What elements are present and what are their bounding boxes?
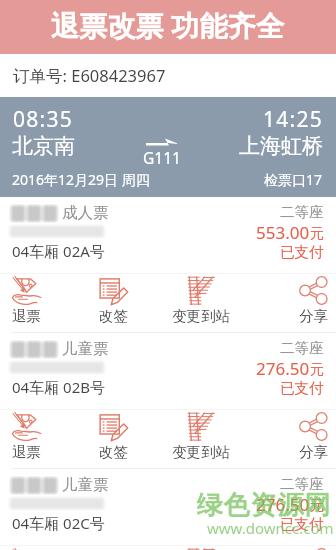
staticText: 276.50 xyxy=(256,493,310,516)
staticText: 已支付 xyxy=(280,379,324,397)
staticText: 04车厢 02C号 xyxy=(12,513,105,533)
staticText: 二等座 xyxy=(280,339,324,357)
staticText: 276.50 xyxy=(256,357,310,380)
staticText: 订单号: E608423967 xyxy=(13,64,166,87)
staticText: 儿童票 xyxy=(62,339,109,359)
staticText: 元 xyxy=(310,497,324,515)
staticText: 北京南 xyxy=(12,133,75,159)
button[interactable]: Change destination xyxy=(164,276,238,328)
button[interactable]: Change ticket xyxy=(76,412,150,464)
staticText: 退票 xyxy=(12,307,41,325)
staticText: 变更到站 xyxy=(172,307,230,325)
button[interactable]: Change destination xyxy=(164,412,238,464)
button[interactable]: Change destination xyxy=(164,548,238,550)
button[interactable]: Change ticket xyxy=(76,276,150,328)
staticText: www.downcc.com xyxy=(207,518,334,538)
staticText: 08:35 xyxy=(13,105,74,134)
staticText: 04车厢 02B号 xyxy=(12,377,105,397)
staticText: 退票 xyxy=(12,443,41,461)
staticText: 改签 xyxy=(99,443,128,461)
staticText: 改签 xyxy=(99,307,128,325)
staticText: 儿童票 xyxy=(62,475,109,495)
staticText: 553.00 xyxy=(256,221,310,244)
staticText: 元 xyxy=(310,225,324,243)
button[interactable]: Refund ticket xyxy=(0,412,63,464)
staticText: 二等座 xyxy=(280,475,324,493)
staticText: 变更到站 xyxy=(172,443,230,461)
staticText: 2016年12月29日 周四 xyxy=(12,170,150,189)
staticText: 元 xyxy=(310,361,324,379)
staticText: 二等座 xyxy=(280,203,324,221)
staticText: 绿色资源网 xyxy=(196,489,331,522)
staticText: 分享 xyxy=(299,443,328,461)
staticText: 成人票 xyxy=(62,203,109,223)
button[interactable]: Refund ticket xyxy=(0,548,63,550)
button[interactable]: Share xyxy=(276,276,336,328)
staticText: 分享 xyxy=(299,307,328,325)
staticText: 检票口17 xyxy=(264,170,323,189)
staticText: G111 xyxy=(143,147,181,168)
button[interactable]: Refund ticket xyxy=(0,276,63,328)
button[interactable]: Share xyxy=(276,412,336,464)
staticText: 已支付 xyxy=(280,243,324,261)
staticText: 上海虹桥 xyxy=(239,133,323,159)
staticText: 退票改票 功能齐全 xyxy=(51,6,285,44)
staticText: 04车厢 02A号 xyxy=(12,241,105,261)
staticText: 14:25 xyxy=(263,105,324,134)
button[interactable]: Share xyxy=(276,548,336,550)
staticText: 已支付 xyxy=(280,515,324,533)
